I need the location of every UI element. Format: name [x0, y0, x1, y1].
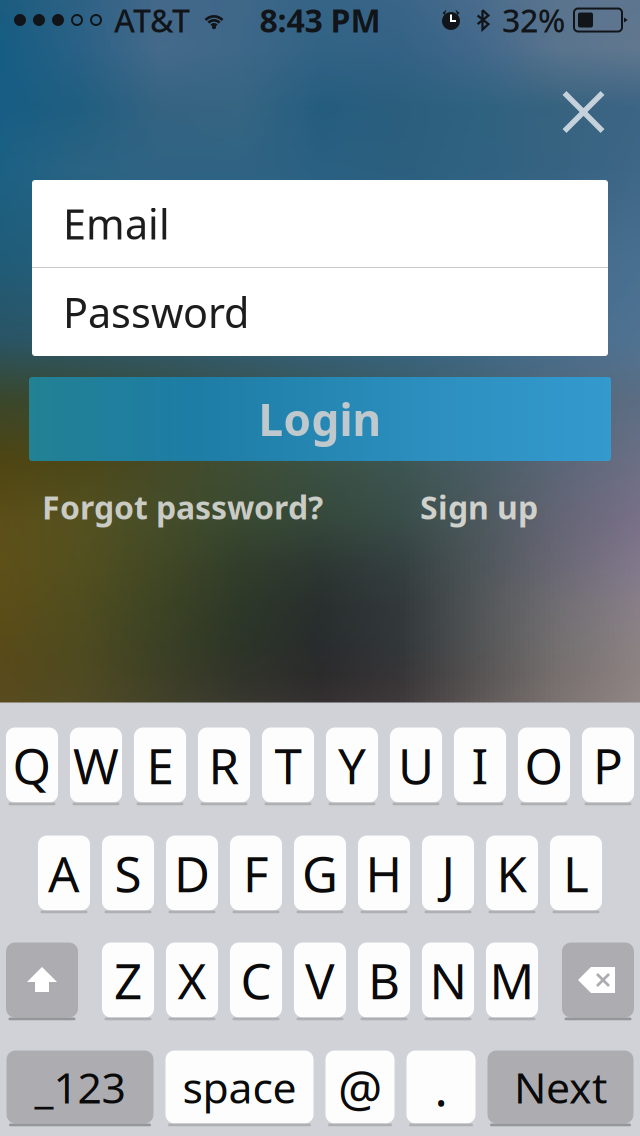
staticText: F	[243, 840, 269, 906]
button[interactable]: G	[294, 835, 346, 913]
staticText: 32%	[502, 0, 565, 41]
button[interactable]: K	[486, 835, 538, 913]
button[interactable]: Email	[32, 180, 608, 267]
button[interactable]: Y	[326, 727, 378, 805]
staticText: E	[146, 732, 173, 798]
button[interactable]: R	[198, 727, 250, 805]
staticText: Sign up	[420, 486, 538, 528]
staticText: K	[496, 840, 527, 906]
staticText: D	[174, 840, 210, 906]
button[interactable]: Password	[32, 268, 608, 356]
button[interactable]: T	[262, 727, 314, 805]
button[interactable]: S	[102, 835, 154, 913]
button[interactable]: Next	[487, 1050, 633, 1126]
button[interactable]: A	[38, 835, 90, 913]
button[interactable]: Forgot password?	[40, 485, 325, 529]
staticText: J	[441, 840, 454, 906]
button[interactable]: Z	[102, 942, 154, 1020]
button[interactable]: Q	[6, 727, 58, 805]
button[interactable]: .	[406, 1050, 475, 1126]
button[interactable]: M	[486, 942, 538, 1020]
button[interactable]: B	[358, 942, 410, 1020]
staticText: A	[48, 840, 80, 906]
button[interactable]: Close	[541, 70, 625, 154]
button[interactable]: U	[390, 727, 442, 805]
button[interactable]: Sign up	[418, 485, 540, 529]
button[interactable]: _123	[6, 1050, 153, 1126]
button[interactable]: D	[166, 835, 218, 913]
staticText: G	[302, 840, 338, 906]
staticText: Email	[63, 196, 170, 251]
staticText: Z	[114, 947, 142, 1013]
button[interactable]: space	[165, 1050, 313, 1126]
button[interactable]: O	[518, 727, 570, 805]
button[interactable]: W	[70, 727, 122, 805]
staticText: O	[524, 732, 563, 798]
button[interactable]: I	[454, 727, 506, 805]
staticText: Y	[338, 732, 366, 798]
staticText: Login	[258, 390, 381, 448]
staticText: P	[593, 732, 623, 798]
staticText: X	[177, 947, 206, 1013]
button[interactable]: X	[166, 942, 218, 1020]
button[interactable]: F	[230, 835, 282, 913]
staticText: I	[471, 732, 488, 798]
staticText: Next	[514, 1059, 607, 1115]
staticText: L	[563, 840, 589, 906]
button[interactable]: C	[230, 942, 282, 1020]
staticText: space	[182, 1059, 296, 1115]
staticText: Forgot password?	[42, 486, 323, 528]
staticText: W	[73, 732, 119, 798]
staticText: N	[429, 947, 466, 1013]
button[interactable]: V	[294, 942, 346, 1020]
button[interactable]: Shift	[6, 942, 78, 1020]
staticText: V	[305, 947, 335, 1013]
staticText: R	[208, 732, 239, 798]
staticText: C	[240, 947, 271, 1013]
staticText: S	[114, 840, 141, 906]
button[interactable]: N	[422, 942, 474, 1020]
staticText: B	[368, 947, 400, 1013]
button[interactable]: L	[550, 835, 602, 913]
staticText: H	[365, 840, 402, 906]
staticText: .	[434, 1054, 447, 1120]
button[interactable]: J	[422, 835, 474, 913]
staticText: Q	[12, 732, 51, 798]
staticText: M	[489, 947, 534, 1013]
button[interactable]: P	[582, 727, 634, 805]
staticText: _123	[34, 1059, 125, 1115]
button[interactable]: Login	[29, 377, 611, 461]
staticText: 8:43 PM	[259, 0, 380, 41]
button[interactable]: Delete	[562, 942, 634, 1020]
staticText: U	[398, 732, 434, 798]
staticText: @	[338, 1054, 382, 1120]
staticText: Password	[63, 285, 249, 339]
button[interactable]: E	[134, 727, 186, 805]
button[interactable]: H	[358, 835, 410, 913]
button[interactable]: @	[325, 1050, 394, 1126]
staticText: AT&T	[114, 0, 190, 41]
staticText: T	[274, 732, 301, 798]
